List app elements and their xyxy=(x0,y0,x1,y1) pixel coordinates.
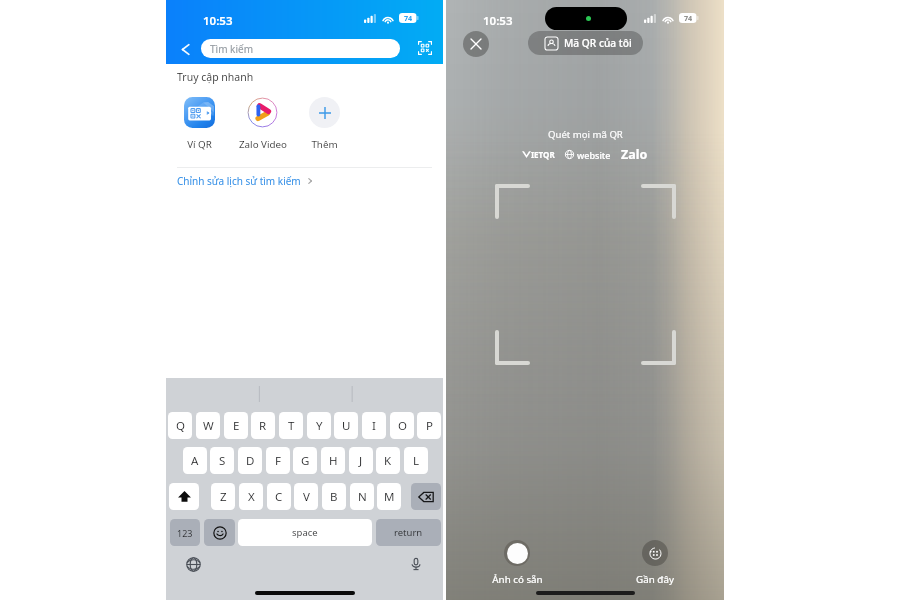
staticText: T xyxy=(288,418,295,434)
button[interactable]: G xyxy=(293,447,317,474)
staticText: Y xyxy=(316,418,323,434)
staticText: F xyxy=(275,453,281,469)
staticText: space xyxy=(292,526,318,539)
button[interactable]: K xyxy=(376,447,400,474)
staticText: H xyxy=(329,453,338,469)
staticText: B xyxy=(330,489,338,505)
button[interactable]: Gần đây xyxy=(625,540,685,586)
staticText: 74 xyxy=(404,13,413,23)
staticText: Thêm xyxy=(311,138,338,151)
button[interactable]: S xyxy=(210,447,234,474)
button[interactable]: V xyxy=(294,483,318,510)
button[interactable]: Back xyxy=(172,36,198,62)
button[interactable]: Z xyxy=(211,483,235,510)
staticText: E xyxy=(233,418,240,434)
staticText: V xyxy=(303,489,310,505)
button[interactable]: R xyxy=(251,412,275,439)
staticText: Truy cập nhanh xyxy=(177,70,254,84)
button[interactable]: M xyxy=(377,483,401,510)
staticText: X xyxy=(248,489,255,505)
staticText: Ảnh có sẵn xyxy=(492,573,543,586)
staticText: I xyxy=(372,418,376,434)
staticText: U xyxy=(342,418,351,434)
staticText: L xyxy=(413,453,420,469)
button[interactable]: Shift xyxy=(169,483,199,510)
staticText: Gần đây xyxy=(636,573,674,586)
staticText: P xyxy=(426,418,433,434)
staticText: return xyxy=(394,526,423,539)
button[interactable]: Tìm kiếm xyxy=(201,39,400,58)
button[interactable]: 123 xyxy=(170,519,200,546)
staticText: O xyxy=(398,418,407,434)
staticText: G xyxy=(301,453,310,469)
staticText: C xyxy=(275,489,283,505)
staticText: 123 xyxy=(177,527,193,539)
staticText: Zalo xyxy=(621,146,648,163)
button[interactable]: W xyxy=(196,412,220,439)
button[interactable]: C xyxy=(267,483,291,510)
staticText: J xyxy=(359,453,363,469)
button[interactable]: X xyxy=(239,483,263,510)
button[interactable]: A xyxy=(183,447,207,474)
staticText: website xyxy=(577,149,611,161)
button[interactable]: T xyxy=(279,412,303,439)
button[interactable]: H xyxy=(321,447,345,474)
button[interactable]: I xyxy=(362,412,386,439)
button[interactable]: Scan QR code xyxy=(412,35,438,61)
button[interactable]: Ảnh có sẵn xyxy=(487,540,547,586)
button[interactable]: Chỉnh sửa lịch sử tìm kiếm xyxy=(166,168,443,194)
staticText: A xyxy=(191,453,199,469)
staticText: 10:53 xyxy=(203,13,233,29)
staticText: S xyxy=(219,453,226,469)
staticText: W xyxy=(203,418,214,434)
button[interactable]: O xyxy=(390,412,414,439)
button[interactable]: U xyxy=(334,412,358,439)
button[interactable]: L xyxy=(404,447,428,474)
button[interactable]: F xyxy=(266,447,290,474)
button[interactable]: Close xyxy=(463,31,489,57)
button[interactable]: D xyxy=(238,447,262,474)
staticText: Q xyxy=(176,418,185,434)
staticText: M xyxy=(384,489,395,505)
staticText: Tìm kiếm xyxy=(210,42,253,56)
button[interactable]: E xyxy=(224,412,248,439)
button[interactable]: Emoji xyxy=(204,519,235,546)
staticText: Quét mọi mã QR xyxy=(548,128,623,141)
staticText: Z xyxy=(220,489,227,505)
staticText: Chỉnh sửa lịch sử tìm kiếm xyxy=(177,174,301,188)
staticText: R xyxy=(259,418,267,434)
button[interactable]: Dictation xyxy=(405,553,427,575)
button[interactable]: Mã QR của tôi xyxy=(528,31,643,55)
button[interactable]: space xyxy=(238,519,372,546)
button[interactable]: P xyxy=(417,412,441,439)
button[interactable]: return xyxy=(376,519,441,546)
staticText: Zalo Video xyxy=(239,138,287,151)
staticText: K xyxy=(384,453,392,469)
button[interactable]: J xyxy=(349,447,373,474)
button[interactable]: Q xyxy=(168,412,192,439)
staticText: 10:53 xyxy=(483,13,513,29)
button[interactable]: Backspace xyxy=(411,483,441,510)
button[interactable]: Zalo Video xyxy=(231,97,294,151)
button[interactable]: N xyxy=(350,483,374,510)
button[interactable]: Thêm xyxy=(293,97,356,151)
button[interactable]: Ví QR xyxy=(168,97,231,151)
button[interactable]: Y xyxy=(307,412,331,439)
button[interactable]: B xyxy=(322,483,346,510)
button[interactable]: Change keyboard xyxy=(182,553,204,575)
staticText: N xyxy=(358,489,367,505)
staticText: 74 xyxy=(684,13,693,23)
staticText: D xyxy=(246,453,255,469)
staticText: Ví QR xyxy=(187,138,212,151)
staticText: IETQR xyxy=(531,149,555,160)
staticText: Mã QR của tôi xyxy=(564,36,632,50)
